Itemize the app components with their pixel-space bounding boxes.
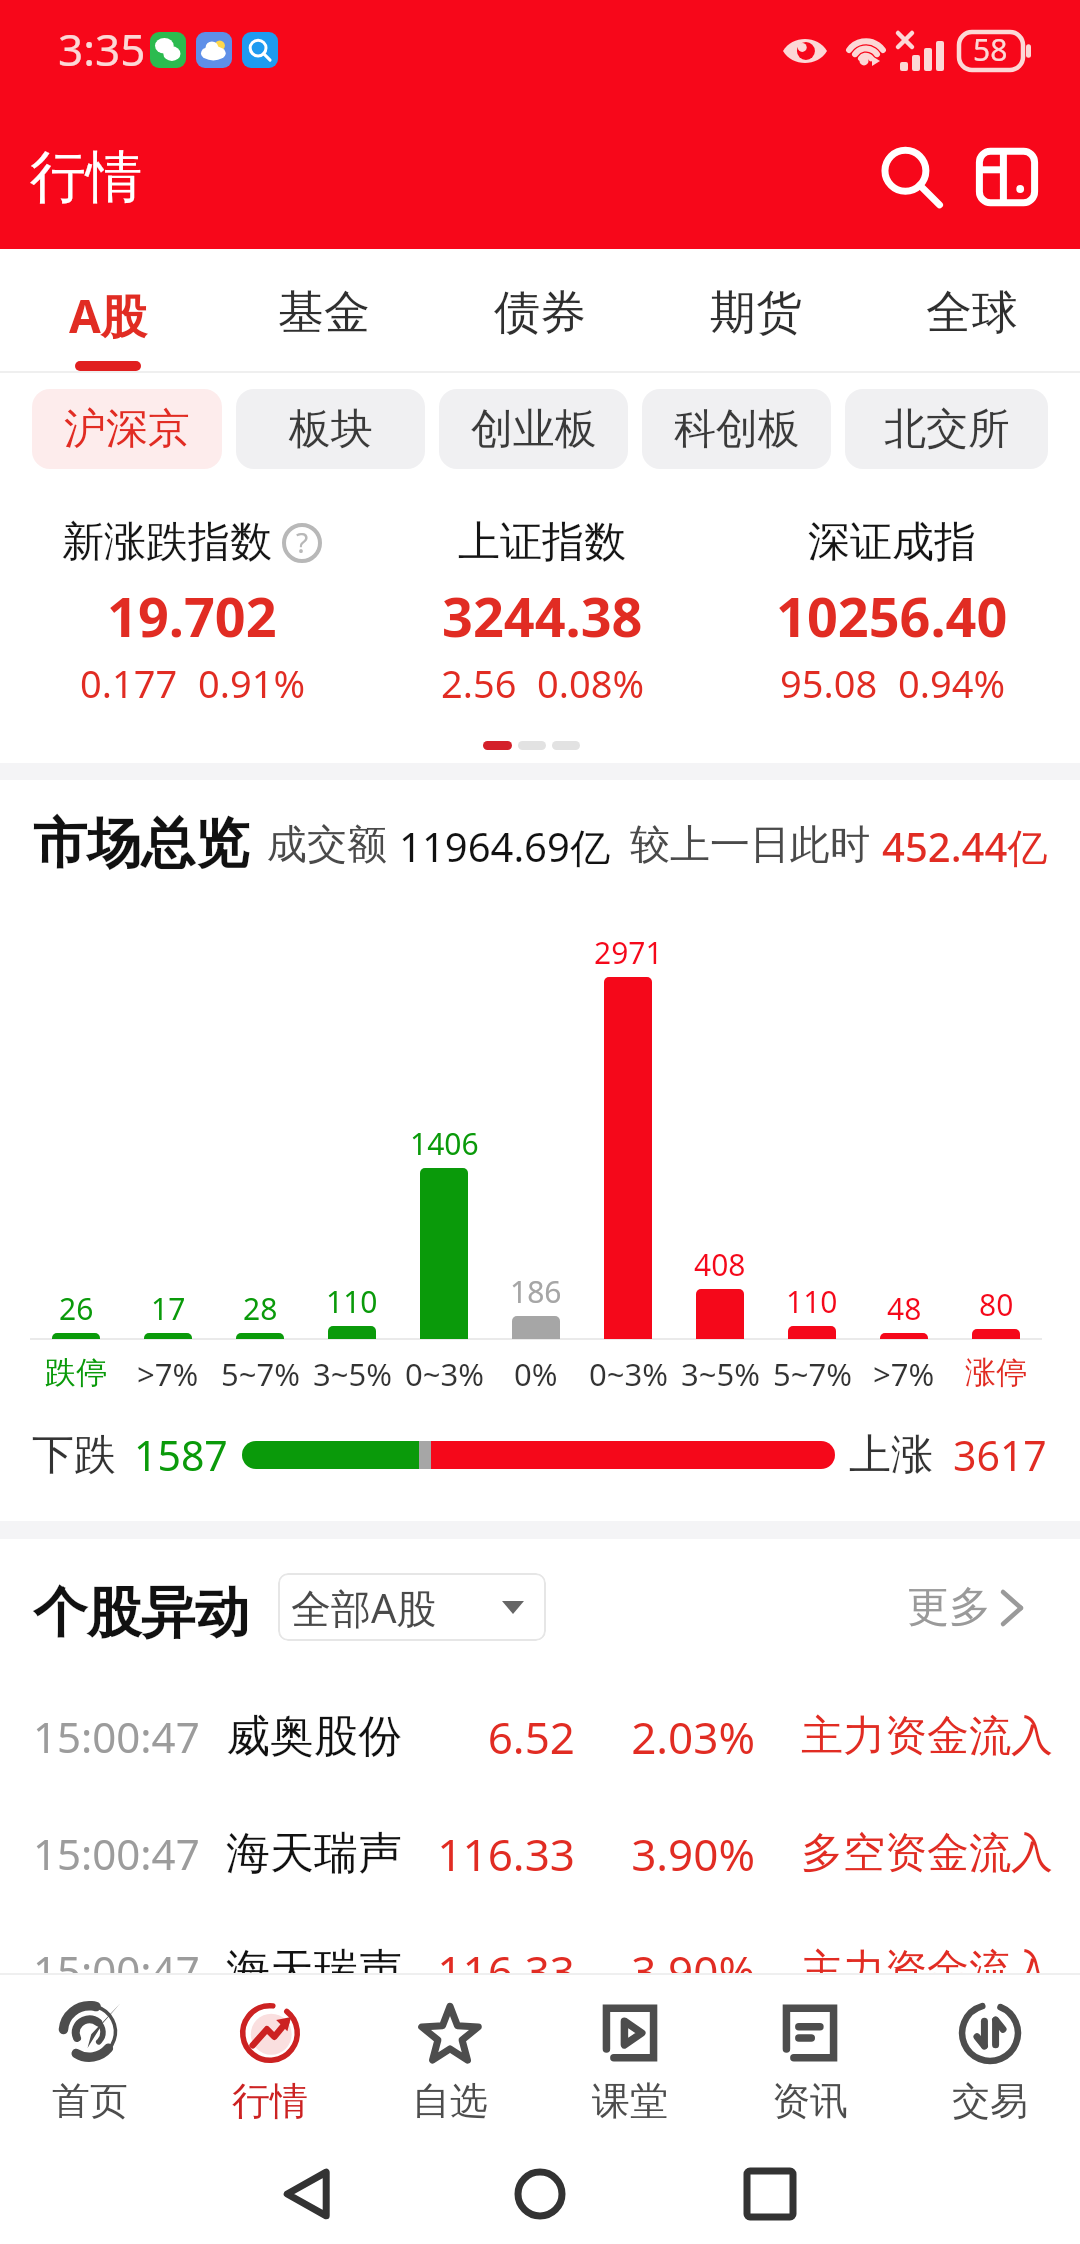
staticText: 116.33 <box>375 1824 575 1884</box>
staticText: 0% <box>514 1353 558 1395</box>
button[interactable]: 债券 <box>432 249 648 373</box>
staticText: 2.56 <box>441 657 517 709</box>
staticText: 19.702 <box>107 579 277 653</box>
staticText: 5~7% <box>221 1353 300 1395</box>
button[interactable]: 基金 <box>216 249 432 373</box>
staticText: 主力资金流入 <box>801 1944 1053 1997</box>
staticText: 行情 <box>232 2077 308 2125</box>
staticText: 58 <box>973 29 1008 70</box>
staticText: 自选 <box>412 2077 488 2125</box>
staticText: 0.94% <box>898 657 1005 709</box>
staticText: 资讯 <box>772 2077 848 2125</box>
staticText: 跌停 <box>45 1353 107 1392</box>
button[interactable]: 全球 <box>864 249 1080 373</box>
staticText: 下跌 <box>32 1429 116 1482</box>
staticText: 交易 <box>952 2077 1028 2125</box>
staticText: 首页 <box>52 2077 128 2125</box>
staticText: 海天瑞声 <box>226 1943 402 1998</box>
button[interactable]: 15:00:47 <box>0 1912 1080 2029</box>
button[interactable]: 深证成指 <box>717 485 1067 715</box>
staticText: 3:35 <box>58 19 146 79</box>
staticText: 1406 <box>410 1123 479 1164</box>
staticText: 市场总览 <box>33 810 249 878</box>
staticText: 成交额 <box>267 819 387 869</box>
button[interactable]: 资讯 <box>720 1973 900 2133</box>
staticText: 408 <box>694 1244 746 1285</box>
button[interactable]: 上证指数 <box>367 485 717 715</box>
button[interactable]: 板块 <box>236 389 425 469</box>
button[interactable]: 15:00:47 <box>0 1795 1080 1912</box>
staticText: 上涨 <box>849 1429 933 1482</box>
button[interactable]: 行情 <box>180 1973 360 2133</box>
button[interactable]: 更多 <box>901 1575 1029 1640</box>
staticText: 0.177 <box>80 657 178 709</box>
staticText: 深证成指 <box>808 516 976 569</box>
staticText: 上证指数 <box>458 516 626 569</box>
staticText: 基金 <box>278 284 370 342</box>
button[interactable]: 自选 <box>360 1973 540 2133</box>
staticText: 15:00:47 <box>33 1825 200 1882</box>
staticText: 3~5% <box>681 1353 760 1395</box>
button[interactable]: 全部A股 <box>278 1573 546 1641</box>
staticText: 0~3% <box>405 1353 484 1395</box>
staticText: 3.90% <box>595 1941 755 2001</box>
staticText: 110 <box>326 1281 378 1322</box>
staticText: 26 <box>59 1288 94 1329</box>
staticText: 15:00:47 <box>33 1942 200 1999</box>
staticText: 更多 <box>907 1581 991 1634</box>
staticText: 主力资金流入 <box>801 1710 1053 1763</box>
staticText: 威奥股份 <box>226 1709 402 1764</box>
button[interactable]: 北交所 <box>845 389 1048 469</box>
staticText: 课堂 <box>592 2077 668 2125</box>
staticText: 个股异动 <box>33 1579 249 1647</box>
staticText: 28 <box>243 1288 278 1329</box>
staticText: 80 <box>979 1284 1014 1325</box>
button[interactable]: 15:00:47 <box>0 1678 1080 1795</box>
button[interactable]: 创业板 <box>439 389 628 469</box>
staticText: 116.33 <box>375 1941 575 2001</box>
button[interactable]: Search <box>866 132 956 222</box>
staticText: 0~3% <box>589 1353 668 1395</box>
staticText: 全部A股 <box>291 1580 437 1635</box>
staticText: >7% <box>137 1353 199 1395</box>
staticText: 15:00:47 <box>33 1708 200 1765</box>
staticText: 11964.69亿 <box>399 819 610 874</box>
staticText: 3.90% <box>595 1824 755 1884</box>
button[interactable]: 交易 <box>900 1973 1080 2133</box>
button[interactable]: 首页 <box>0 1973 180 2133</box>
button[interactable]: Back <box>268 2154 348 2234</box>
staticText: 10256.40 <box>776 579 1008 653</box>
button[interactable]: Recents <box>730 2154 810 2234</box>
button[interactable]: 期货 <box>648 249 864 373</box>
staticText: 3617 <box>953 1427 1047 1483</box>
staticText: 科创板 <box>674 403 800 456</box>
staticText: 3244.38 <box>442 579 643 653</box>
staticText: 2.03% <box>595 1707 755 1767</box>
button[interactable]: Home <box>500 2154 580 2234</box>
button[interactable]: 科创板 <box>642 389 831 469</box>
staticText: 452.44亿 <box>882 819 1048 874</box>
staticText: 95.08 <box>780 657 878 709</box>
staticText: 6.52 <box>375 1707 575 1767</box>
staticText: 3~5% <box>313 1353 392 1395</box>
button[interactable]: 沪深京 <box>32 389 222 469</box>
staticText: 17 <box>151 1288 186 1329</box>
staticText: 新涨跌指数 <box>62 516 272 569</box>
button[interactable]: Statistics <box>962 132 1052 222</box>
staticText: A股 <box>69 284 147 347</box>
staticText: 涨停 <box>965 1353 1027 1392</box>
staticText: 0.08% <box>537 657 644 709</box>
staticText: 0.91% <box>198 657 305 709</box>
staticText: 债券 <box>494 284 586 342</box>
staticText: 海天瑞声 <box>226 1826 402 1881</box>
staticText: 110 <box>786 1281 838 1322</box>
staticText: 较上一日此时 <box>630 819 870 869</box>
staticText: 期货 <box>710 284 802 342</box>
staticText: 186 <box>510 1271 562 1312</box>
staticText: 5~7% <box>773 1353 852 1395</box>
button[interactable]: A股 <box>0 249 216 373</box>
staticText: 沪深京 <box>64 403 190 456</box>
staticText: 2971 <box>594 932 663 973</box>
button[interactable]: 新涨跌指数 <box>17 485 367 715</box>
button[interactable]: 课堂 <box>540 1973 720 2133</box>
